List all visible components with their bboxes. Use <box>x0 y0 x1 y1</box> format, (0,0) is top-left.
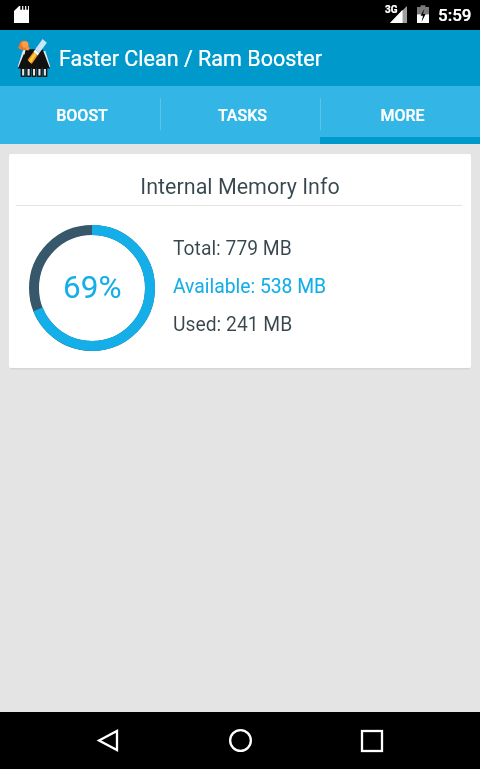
staticText: Used: 241 MB <box>173 313 293 336</box>
button[interactable]: Home <box>198 712 282 769</box>
button[interactable]: BOOST <box>0 86 160 144</box>
staticText: Total: 779 MB <box>173 237 292 260</box>
button[interactable]: TASKS <box>160 86 320 144</box>
staticText: BOOST <box>56 106 108 125</box>
staticText: 69% <box>63 269 122 306</box>
button[interactable]: MORE <box>320 86 480 144</box>
button[interactable]: Back <box>66 712 150 769</box>
staticText: Faster Clean / Ram Booster <box>59 46 322 71</box>
staticText: 5:59 <box>438 5 472 25</box>
staticText: TASKS <box>218 106 267 125</box>
button[interactable]: Recent apps <box>330 712 414 769</box>
staticText: Available: 538 MB <box>173 275 327 298</box>
staticText: MORE <box>380 106 425 125</box>
staticText: Internal Memory Info <box>9 174 471 199</box>
staticText: 3G <box>385 4 398 16</box>
